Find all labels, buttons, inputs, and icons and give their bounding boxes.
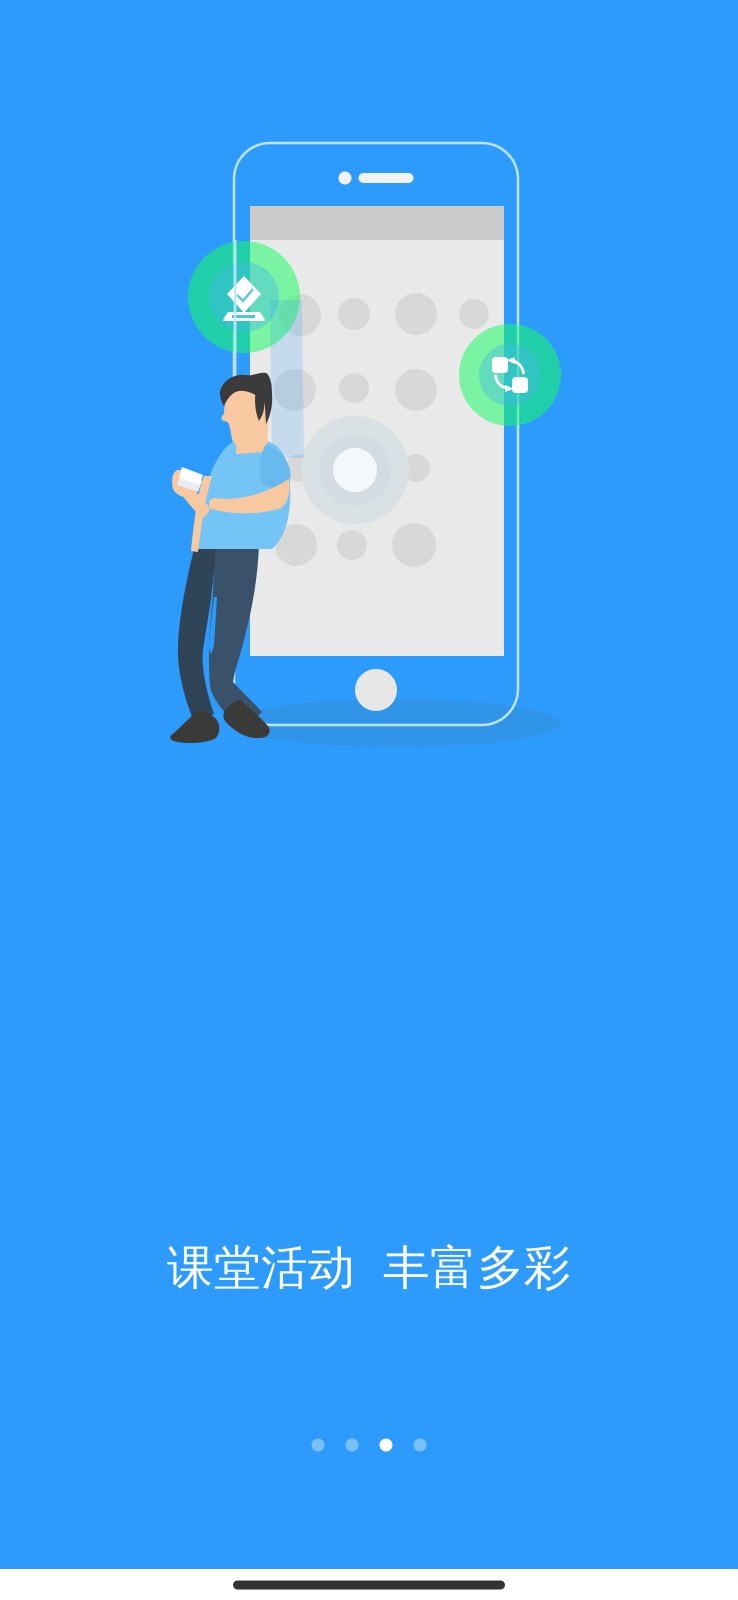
staticText: 课堂活动 丰富多彩 [167, 1239, 571, 1297]
